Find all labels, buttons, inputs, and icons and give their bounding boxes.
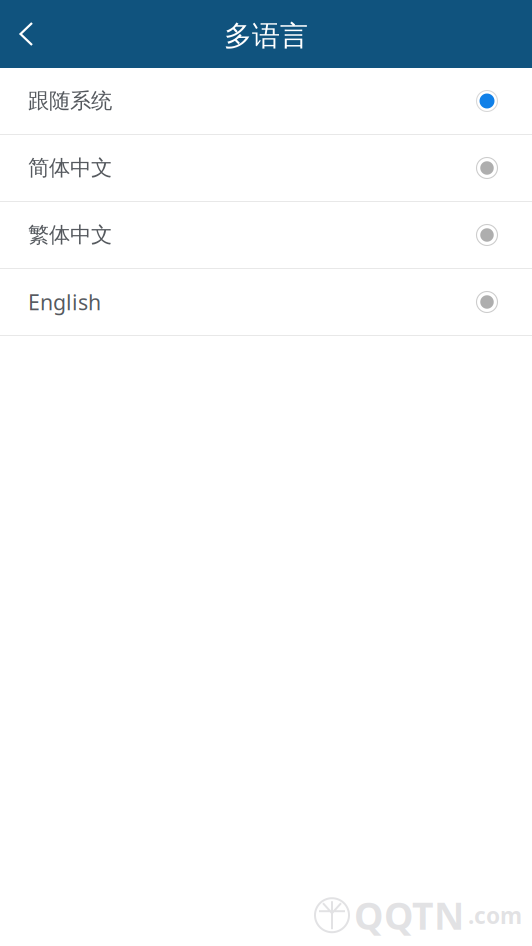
button[interactable]: Back xyxy=(0,0,49,68)
button[interactable]: 简体中文 xyxy=(0,135,532,202)
staticText: 繁体中文 xyxy=(28,222,112,248)
staticText: QQTN xyxy=(354,890,464,940)
staticText: .com xyxy=(468,900,522,930)
staticText: English xyxy=(28,288,101,316)
button[interactable]: 繁体中文 xyxy=(0,202,532,269)
button[interactable]: English xyxy=(0,269,532,336)
button[interactable]: 跟随系统 xyxy=(0,68,532,135)
staticText: 多语言 xyxy=(224,19,308,53)
staticText: 跟随系统 xyxy=(28,88,112,114)
staticText: 简体中文 xyxy=(28,155,112,181)
